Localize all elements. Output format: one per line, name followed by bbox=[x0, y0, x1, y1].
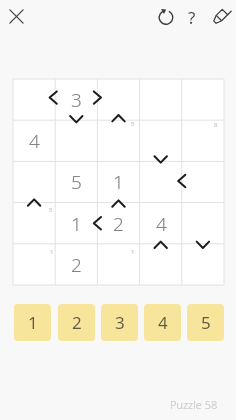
button[interactable]: 1 bbox=[14, 304, 51, 341]
staticText: 2 bbox=[71, 252, 82, 278]
staticText: 4 bbox=[158, 311, 168, 334]
staticText: 2 bbox=[113, 211, 124, 237]
staticText: 1 bbox=[28, 311, 38, 334]
staticText: 4 bbox=[156, 211, 167, 237]
button[interactable] bbox=[6, 6, 28, 28]
button[interactable] bbox=[155, 6, 177, 28]
staticText: 3 bbox=[115, 311, 125, 334]
staticText: 1 bbox=[131, 248, 135, 256]
staticText: 3 bbox=[71, 87, 82, 113]
staticText: 2 bbox=[72, 311, 82, 334]
button[interactable]: ? bbox=[183, 5, 201, 29]
staticText: Puzzle 58 bbox=[170, 397, 218, 412]
button[interactable]: 3 bbox=[101, 304, 138, 341]
staticText: 5 bbox=[201, 311, 211, 334]
button[interactable]: 4 bbox=[144, 304, 181, 341]
staticText: 5 bbox=[71, 169, 82, 195]
staticText: 1 bbox=[113, 169, 124, 195]
button[interactable]: 5 bbox=[187, 304, 224, 341]
staticText: 1 bbox=[50, 248, 54, 256]
button[interactable] bbox=[209, 5, 231, 27]
staticText: 4 bbox=[29, 128, 40, 154]
staticText: 5 bbox=[49, 206, 53, 214]
staticText: 6 bbox=[214, 121, 218, 129]
staticText: ? bbox=[188, 6, 196, 29]
staticText: 5 bbox=[131, 120, 135, 128]
staticText: 1 bbox=[71, 211, 82, 237]
button[interactable]: 2 bbox=[58, 304, 95, 341]
